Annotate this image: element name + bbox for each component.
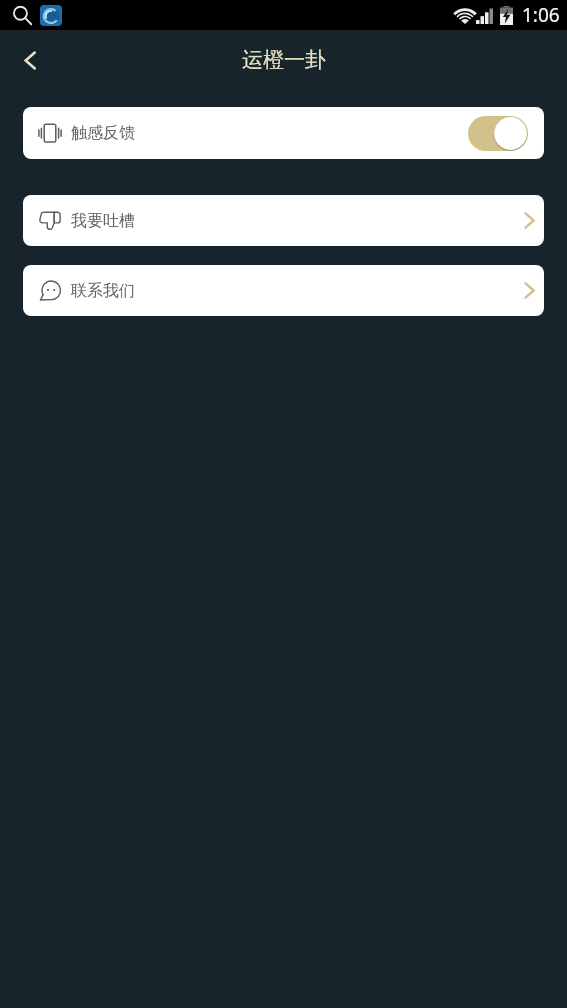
button[interactable]: Back [8, 38, 52, 82]
staticText: 联系我们 [71, 281, 135, 301]
button[interactable]: 联系我们 [23, 265, 544, 316]
staticText: 1:06 [522, 2, 560, 28]
button[interactable]: Search [11, 4, 33, 26]
button[interactable]: 触感反馈 [23, 107, 544, 159]
button[interactable]: Haptic feedback, on [468, 116, 528, 151]
staticText: 我要吐槽 [71, 211, 135, 231]
staticText: 触感反馈 [71, 123, 135, 143]
staticText: 运橙一卦 [242, 47, 326, 73]
button[interactable]: 我要吐槽 [23, 195, 544, 246]
